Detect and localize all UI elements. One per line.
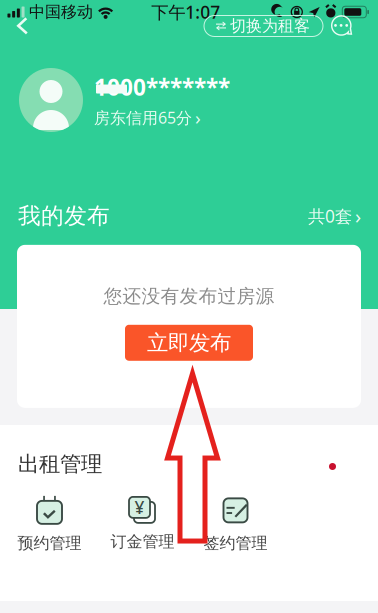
staticText: 房东信用65分 [94, 107, 192, 128]
staticText: 切换为租客 [230, 16, 310, 36]
staticText: 下午1:07 [151, 0, 220, 23]
button[interactable]: 更多 [323, 13, 378, 38]
staticText: ¥ [134, 496, 144, 519]
staticText: › [195, 105, 201, 130]
staticText: 我的发布 [18, 202, 110, 230]
staticText: 中国移动 [29, 2, 93, 22]
staticText: 预约管理 [17, 533, 81, 553]
staticText: › [355, 203, 361, 229]
button[interactable]: 签约管理 [189, 491, 282, 557]
staticText: 签约管理 [203, 533, 267, 553]
button[interactable]: ¥ [96, 491, 189, 557]
staticText: 立即发布 [147, 330, 231, 356]
button[interactable]: 立即发布 [125, 325, 253, 361]
button[interactable]: 房东信用65分 [94, 105, 201, 130]
staticText: 出租管理 [18, 451, 102, 477]
button[interactable]: 共0套 [308, 203, 361, 229]
staticText: 1000******* [94, 72, 230, 102]
button[interactable]: 返回 [0, 13, 42, 39]
staticText: 您还没有发布过房源 [103, 285, 274, 308]
button[interactable]: 切换为租客 [204, 15, 323, 36]
staticText: 订金管理 [110, 532, 174, 552]
button[interactable]: 预约管理 [3, 491, 96, 557]
staticText: 共0套 [308, 204, 352, 227]
